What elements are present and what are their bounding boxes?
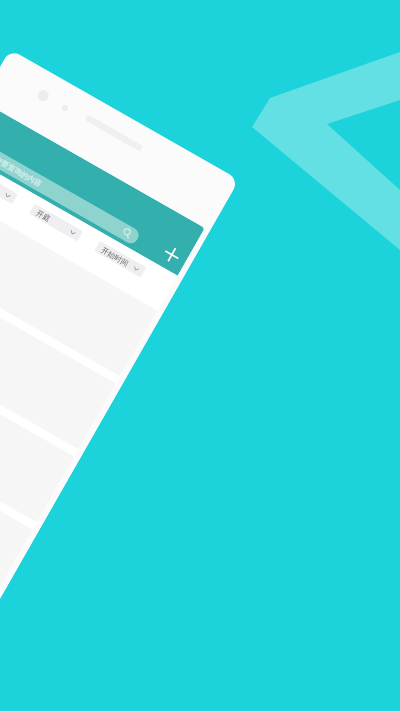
staticText: 开始时间 — [100, 245, 130, 268]
button[interactable]: 开始时间 — [94, 241, 147, 278]
button[interactable]: 请输入您要查询的内容 — [0, 136, 141, 246]
button[interactable]: 开庭 — [29, 203, 83, 242]
button[interactable] — [0, 332, 74, 523]
staticText: 请输入您要查询的内容 — [0, 143, 43, 188]
button[interactable]: 2019-03-14 10:00 — [0, 186, 158, 377]
button[interactable] — [0, 405, 33, 595]
button[interactable] — [0, 259, 116, 450]
button[interactable]: 类型 — [0, 170, 18, 204]
button[interactable]: Add — [155, 238, 188, 270]
staticText: 开庭 — [34, 208, 52, 223]
